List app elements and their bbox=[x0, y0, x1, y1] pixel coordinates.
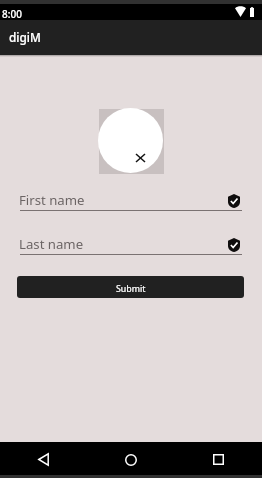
button[interactable]: Recent apps bbox=[204, 445, 232, 473]
staticText: Last name bbox=[19, 235, 84, 253]
button[interactable]: Verified bbox=[225, 235, 243, 253]
button[interactable]: Submit bbox=[17, 276, 244, 298]
button[interactable]: Back bbox=[29, 445, 57, 473]
button[interactable]: Last name bbox=[20, 235, 242, 255]
staticText: 8:00 bbox=[2, 7, 22, 21]
button[interactable]: Verified bbox=[225, 191, 243, 209]
staticText: First name bbox=[19, 191, 85, 209]
button[interactable]: First name bbox=[20, 191, 242, 211]
button[interactable]: Home bbox=[117, 446, 145, 474]
button[interactable]: Profile photo bbox=[98, 108, 163, 173]
staticText: Submit bbox=[116, 283, 146, 295]
staticText: digiM bbox=[9, 29, 41, 45]
